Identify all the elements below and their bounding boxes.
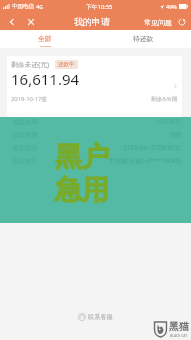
staticText: 2019-10-17签 (11, 95, 48, 103)
staticText: 急用 (55, 173, 109, 207)
button[interactable]: 待还款 (95, 30, 191, 48)
staticText: 常见问题 (144, 18, 172, 27)
staticText: 借款期限 (12, 131, 38, 139)
staticText: 中国电信 (12, 3, 34, 10)
staticText: 剩余未还(元) (11, 60, 50, 69)
staticText: 16,611.94 (11, 69, 80, 89)
staticText: 49% (166, 3, 177, 10)
staticText: 联系客服 (88, 313, 113, 321)
staticText: 每期应还 (12, 144, 38, 152)
button[interactable]: 客服历史 (174, 14, 190, 30)
button[interactable]: 常见问题 (142, 15, 174, 30)
staticText: 全部 (38, 34, 52, 43)
staticText: 还款中 (58, 61, 75, 68)
button[interactable]: 关闭 (22, 13, 39, 30)
staticText: 还款银行 (12, 157, 38, 165)
button[interactable]: 返回 (3, 13, 20, 30)
staticText: 2768.64~2768.66元 (123, 143, 182, 152)
staticText: 我的申请 (74, 16, 110, 27)
staticText: 借款金额 (12, 118, 38, 126)
staticText: 中国建设银行(****0686) (109, 156, 182, 165)
staticText: BLACK CAT (170, 333, 188, 338)
staticText: 4G (36, 3, 44, 10)
button[interactable]: 联系客服 (0, 308, 191, 326)
staticText: 6期 (171, 130, 182, 139)
staticText: 待还款 (133, 34, 154, 43)
staticText: 黑猫 (169, 320, 189, 333)
button[interactable]: 剩余未还(元) (7, 56, 182, 117)
staticText: 黑户 (55, 140, 109, 174)
staticText: 剩余6/6期 (151, 95, 178, 103)
staticText: 下午10:55 (86, 3, 113, 11)
button[interactable]: 全部 (0, 30, 95, 48)
staticText: 15000元 (156, 117, 182, 126)
